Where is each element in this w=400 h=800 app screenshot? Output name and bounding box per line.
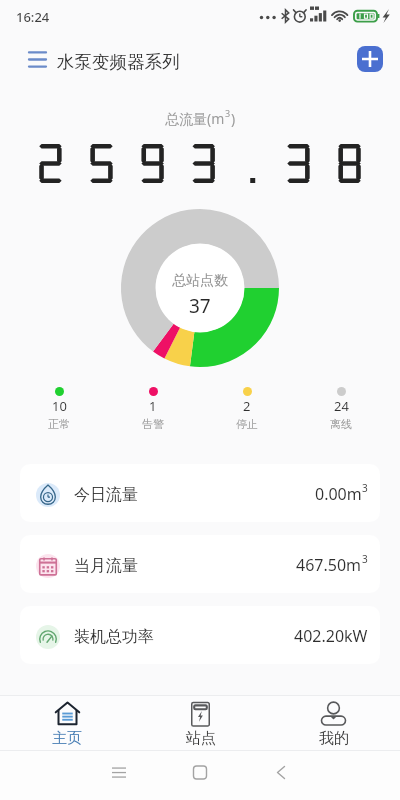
button[interactable]: 24 <box>294 386 388 431</box>
button[interactable]: 10 <box>12 386 106 431</box>
staticText: 3 <box>362 552 368 566</box>
staticText: 3 <box>362 481 368 495</box>
button[interactable]: 今日流量 <box>20 464 380 522</box>
button[interactable]: 主页 <box>0 696 134 750</box>
staticText: 402.20kW <box>294 625 368 647</box>
staticText: 24 <box>334 397 349 415</box>
staticText: 16:24 <box>16 8 50 26</box>
button[interactable]: Menu <box>24 46 50 72</box>
staticText: 10 <box>52 397 67 415</box>
staticText: 主页 <box>52 729 82 748</box>
staticText: 2 <box>243 397 251 415</box>
button[interactable]: 我的 <box>267 696 400 750</box>
staticText: 3 <box>225 107 231 119</box>
staticText: 37 <box>189 293 211 319</box>
button[interactable]: Add <box>357 46 383 72</box>
staticText: 当月流量 <box>74 556 138 576</box>
button[interactable]: 当月流量 <box>20 535 380 593</box>
staticText: 站点 <box>186 729 216 748</box>
staticText: 总站点数 <box>172 272 228 290</box>
staticText: 1 <box>149 397 157 415</box>
staticText: 今日流量 <box>74 485 138 505</box>
staticText: 总流量(m <box>165 109 225 128</box>
staticText: 水泵变频器系列 <box>57 51 180 73</box>
staticText: 0.00m <box>315 483 362 505</box>
staticText: ) <box>231 109 236 128</box>
button[interactable]: 站点 <box>134 696 267 750</box>
button[interactable]: Recent apps <box>0 751 134 800</box>
button[interactable]: 1 <box>106 386 200 431</box>
staticText: 我的 <box>319 729 349 748</box>
staticText: 467.50m <box>296 554 362 576</box>
staticText: 停止 <box>236 417 258 431</box>
button[interactable]: Home <box>134 751 267 800</box>
button[interactable]: 装机总功率 <box>20 606 380 664</box>
staticText: 离线 <box>330 417 352 431</box>
staticText: 正常 <box>48 417 70 431</box>
button[interactable]: Back <box>267 751 400 800</box>
staticText: 告警 <box>142 417 164 431</box>
staticText: 装机总功率 <box>74 627 154 647</box>
button[interactable]: 2 <box>200 386 294 431</box>
